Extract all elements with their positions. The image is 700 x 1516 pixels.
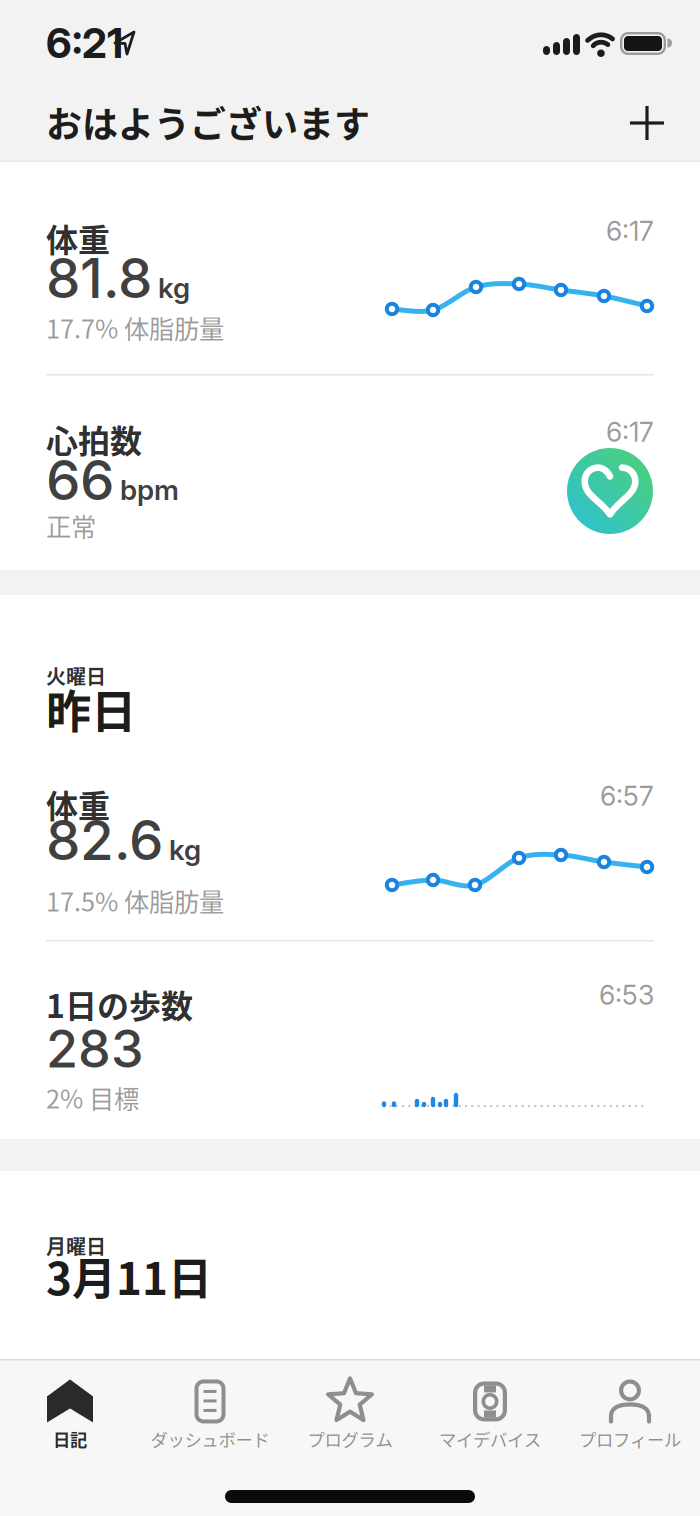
staticText: マイデバイス	[439, 1426, 541, 1452]
staticText: 283	[46, 1017, 144, 1080]
staticText: kg	[158, 271, 190, 305]
staticText: 6:21	[46, 18, 123, 68]
staticText: 6:57	[600, 780, 654, 812]
staticText: 日記	[53, 1426, 87, 1452]
staticText: 82.6	[46, 807, 163, 873]
button[interactable]: プログラム	[280, 1373, 420, 1457]
staticText: bpm	[120, 473, 179, 507]
staticText: プロフィール	[579, 1426, 681, 1452]
staticText: ダッシュボード	[150, 1426, 269, 1452]
button[interactable]: プロフィール	[560, 1373, 700, 1457]
staticText: 正常	[46, 507, 96, 544]
staticText: 体重	[46, 215, 110, 261]
staticText: プログラム	[307, 1426, 392, 1452]
button[interactable]: マイデバイス	[420, 1373, 560, 1457]
staticText: 17.7% 体脂肪量	[46, 309, 224, 346]
button[interactable]: 1日の歩数	[0, 942, 700, 1139]
staticText: 17.5% 体脂肪量	[46, 882, 224, 919]
staticText: 66	[46, 447, 114, 513]
staticText: 体重	[46, 781, 110, 827]
staticText: 3月11日	[46, 1244, 212, 1308]
button[interactable]: ダッシュボード	[140, 1373, 280, 1457]
staticText: 1日の歩数	[46, 981, 193, 1027]
staticText: おはようございます	[46, 96, 370, 148]
button[interactable]: Add	[630, 106, 664, 140]
button[interactable]: 心拍数	[0, 376, 700, 570]
staticText: kg	[169, 833, 201, 867]
staticText: 2% 目標	[46, 1079, 139, 1116]
staticText: 81.8	[46, 245, 152, 311]
staticText: 心拍数	[46, 416, 142, 462]
staticText: 月曜日	[46, 1231, 106, 1260]
staticText: 昨日	[46, 676, 136, 742]
staticText: 火曜日	[46, 661, 106, 690]
button[interactable]: 日記	[0, 1373, 140, 1457]
button[interactable]: 体重	[0, 162, 700, 374]
staticText: 6:17	[606, 215, 654, 247]
staticText: 6:17	[606, 416, 654, 448]
button[interactable]: 体重	[0, 765, 700, 940]
staticText: 6:53	[599, 979, 654, 1011]
